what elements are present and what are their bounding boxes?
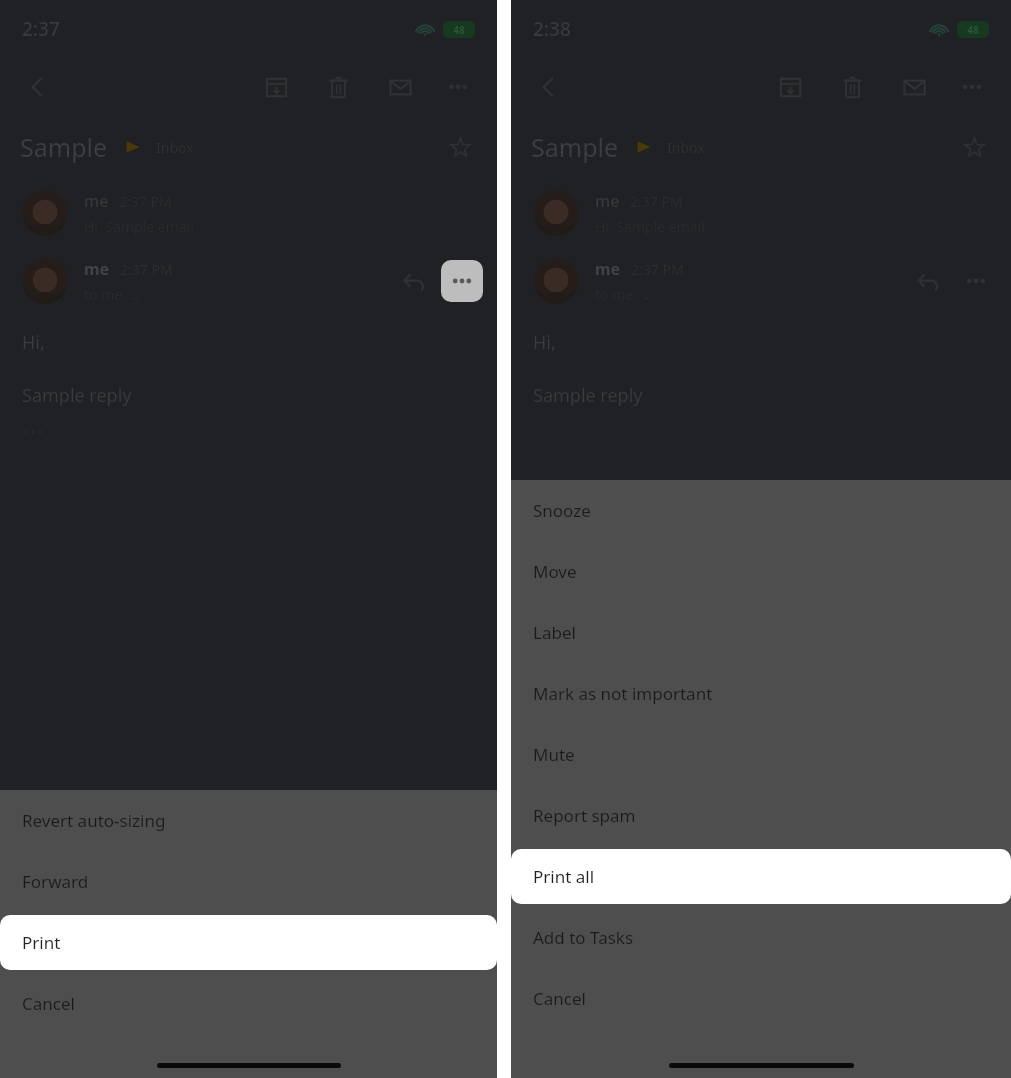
button[interactable]: Mark unread xyxy=(893,66,935,108)
button[interactable]: Label xyxy=(511,605,1011,660)
button[interactable]: Move xyxy=(511,544,1011,599)
button[interactable]: Cancel xyxy=(0,976,497,1031)
staticText: Inbox xyxy=(667,138,705,157)
staticText: Inbox xyxy=(156,138,194,157)
staticText: 2:37 PM xyxy=(630,192,683,211)
button[interactable]: Report spam xyxy=(511,788,1011,843)
staticText: Add to Tasks xyxy=(533,926,634,949)
staticText: me xyxy=(595,258,621,280)
staticText: Move xyxy=(533,560,577,583)
staticText: me xyxy=(84,258,110,280)
staticText: Hi, xyxy=(22,330,45,355)
button[interactable]: Reply xyxy=(907,260,949,302)
button[interactable]: Snooze xyxy=(511,483,1011,538)
button[interactable]: Mute xyxy=(511,727,1011,782)
button[interactable]: Forward xyxy=(0,854,497,909)
staticText: 2:37 PM xyxy=(120,260,173,279)
staticText: Mark as not important xyxy=(533,682,713,705)
staticText: Sample reply xyxy=(533,383,643,408)
staticText: me xyxy=(595,190,620,212)
staticText: Snooze xyxy=(533,499,591,522)
staticText: 48 xyxy=(967,23,979,37)
staticText: Revert auto-sizing xyxy=(22,809,166,832)
staticText: 2:38 xyxy=(533,16,571,42)
button[interactable]: Print all xyxy=(511,849,1011,904)
button[interactable]: Delete xyxy=(317,66,359,108)
staticText: Label xyxy=(533,621,576,644)
staticText: Print xyxy=(22,931,61,954)
staticText: Sample xyxy=(531,130,619,164)
button[interactable]: Archive xyxy=(769,66,811,108)
button[interactable]: Reply xyxy=(393,260,435,302)
staticText: Mute xyxy=(533,743,575,766)
staticText: 2:37 PM xyxy=(631,260,684,279)
button[interactable]: Print xyxy=(0,915,497,970)
staticText: Report spam xyxy=(533,804,636,827)
staticText: 48 xyxy=(453,23,465,37)
staticText: Sample reply xyxy=(22,383,132,408)
button[interactable]: Delete xyxy=(831,66,873,108)
staticText: 2:37 xyxy=(22,16,60,42)
button[interactable]: Add to Tasks xyxy=(511,910,1011,965)
button[interactable]: Revert auto-sizing xyxy=(0,793,497,848)
button[interactable]: Cancel xyxy=(511,971,1011,1026)
button[interactable]: Star xyxy=(441,128,479,166)
staticText: Cancel xyxy=(22,992,75,1015)
button[interactable]: More options xyxy=(441,260,483,302)
staticText: 2:37 PM xyxy=(119,192,172,211)
button[interactable]: Star xyxy=(955,128,993,166)
staticText: Print all xyxy=(533,865,595,888)
staticText: Sample xyxy=(20,130,108,164)
staticText: Cancel xyxy=(533,987,586,1010)
button[interactable]: Mark unread xyxy=(379,66,421,108)
button[interactable]: Mark as not important xyxy=(511,666,1011,721)
staticText: Hi, xyxy=(533,330,556,355)
staticText: me xyxy=(84,190,109,212)
button[interactable]: Archive xyxy=(255,66,297,108)
staticText: Forward xyxy=(22,870,89,893)
